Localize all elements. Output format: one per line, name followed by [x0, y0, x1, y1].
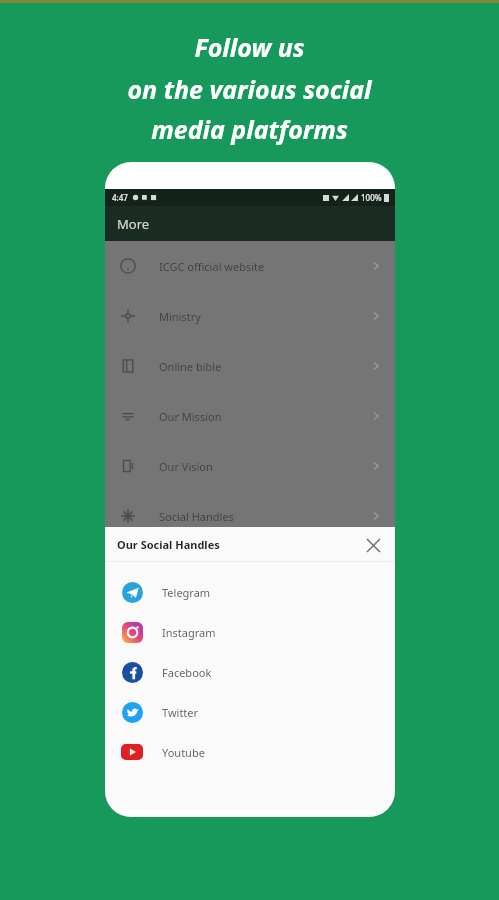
staticText: Instagram [162, 625, 216, 640]
button[interactable]: Our Mission [105, 391, 395, 441]
staticText: Our Social Handles [117, 537, 220, 552]
staticText: 4:47 [112, 192, 128, 203]
button[interactable]: Close [361, 533, 385, 557]
staticText: More [117, 215, 150, 233]
button[interactable]: Instagram [105, 612, 395, 652]
staticText: Telegram [162, 585, 211, 600]
staticText: 100% [361, 192, 382, 203]
staticText: ICGC official website [159, 259, 265, 274]
staticText: Ministry [159, 309, 201, 324]
button[interactable]: Twitter [105, 692, 395, 732]
staticText: Facebook [162, 665, 212, 680]
staticText: Online bible [159, 359, 222, 374]
button[interactable]: ICGC official website [105, 241, 395, 291]
staticText: Our Mission [159, 409, 222, 424]
button[interactable]: Online bible [105, 341, 395, 391]
staticText: on the various social [127, 72, 372, 106]
button[interactable]: Youtube [105, 732, 395, 772]
staticText: Social Handles [159, 509, 234, 524]
staticText: media platforms [151, 112, 348, 146]
button[interactable]: Our Vision [105, 441, 395, 491]
staticText: Twitter [162, 705, 199, 720]
staticText: Follow us [194, 30, 305, 64]
staticText: Our Vision [159, 459, 213, 474]
button[interactable]: Facebook [105, 652, 395, 692]
staticText: Youtube [162, 745, 205, 760]
button[interactable]: Social Handles [105, 491, 395, 541]
button[interactable]: Ministry [105, 291, 395, 341]
button[interactable]: Telegram [105, 572, 395, 612]
